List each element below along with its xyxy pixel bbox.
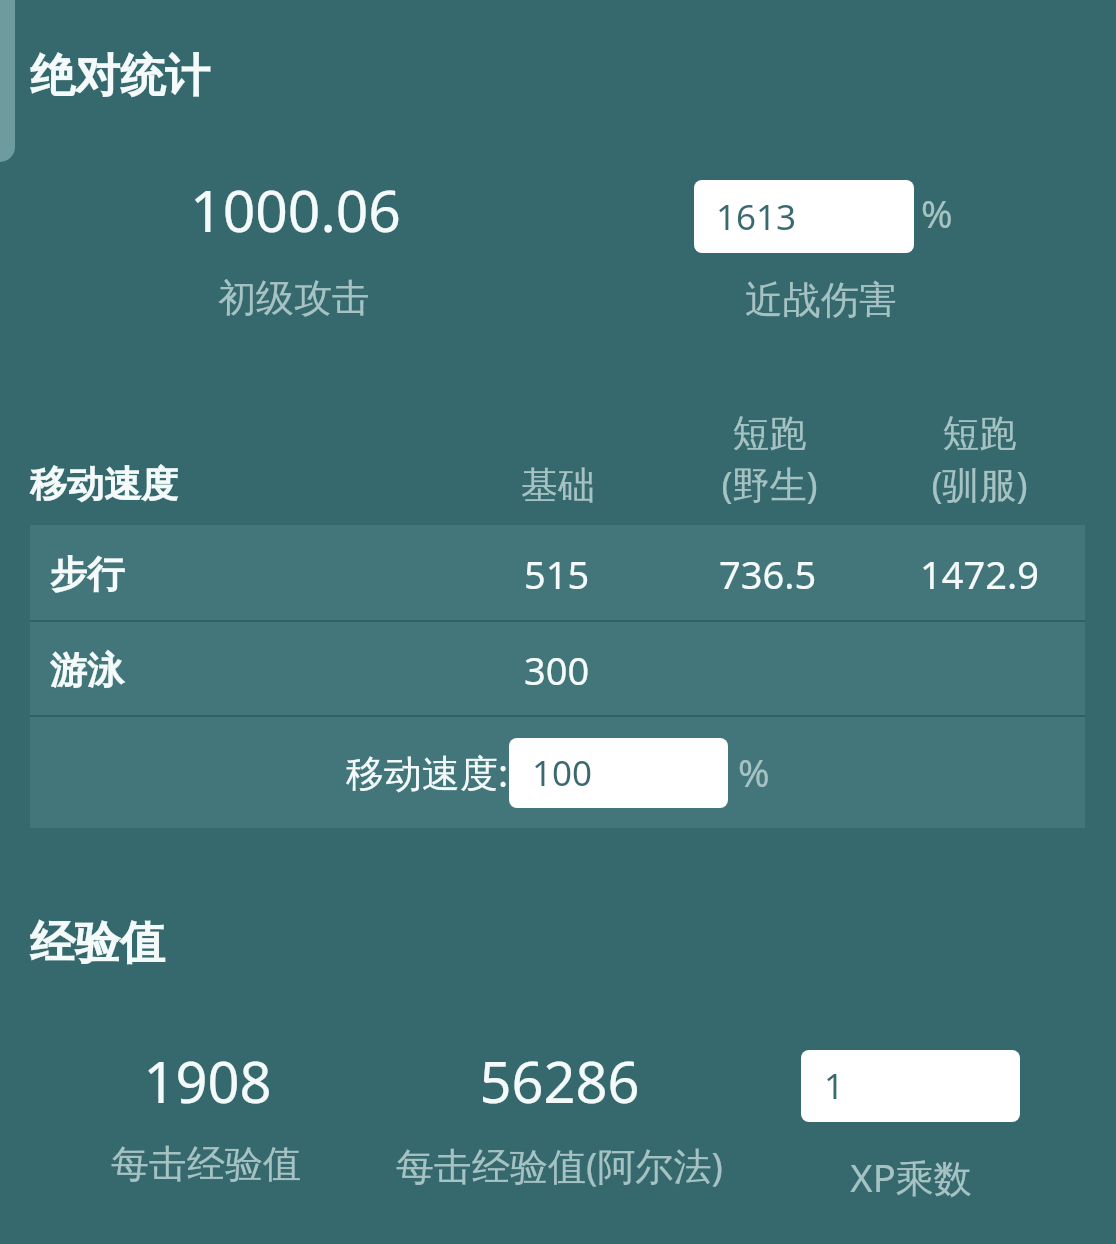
staticText: 1613	[716, 193, 797, 241]
button[interactable]: 游泳	[30, 622, 1085, 715]
staticText: %	[738, 746, 770, 798]
button[interactable]: Navigation drawer handle	[0, 0, 15, 162]
staticText: 近战伤害	[745, 276, 897, 324]
staticText: 300	[524, 644, 590, 696]
staticText: 移动速度	[30, 461, 178, 508]
staticText: 步行	[50, 551, 124, 598]
button[interactable]	[145, 165, 445, 330]
button[interactable]: Melee damage percent input	[694, 180, 914, 253]
button[interactable]: Movement speed percent input	[509, 738, 728, 808]
staticText: 736.5	[719, 548, 817, 600]
staticText: 1472.9	[920, 548, 1039, 600]
button[interactable]: XP multiplier input	[801, 1050, 1020, 1122]
staticText: %	[921, 187, 953, 239]
staticText: 1	[824, 1062, 845, 1110]
staticText: 1000.06	[190, 171, 401, 249]
staticText: 绝对统计	[30, 48, 210, 105]
staticText: 515	[524, 548, 590, 600]
staticText: 每击经验值(阿尔法)	[396, 1139, 723, 1191]
staticText: 经验值	[30, 915, 165, 972]
staticText: 短跑 (驯服)	[931, 410, 1028, 509]
button[interactable]: 步行	[30, 525, 1085, 620]
staticText: 短跑 (野生)	[721, 410, 818, 509]
staticText: 1908	[143, 1043, 272, 1119]
staticText: XP乘数	[850, 1151, 972, 1203]
staticText: 100	[532, 749, 593, 797]
staticText: 移动速度:	[346, 746, 509, 798]
staticText: 初级攻击	[218, 274, 370, 322]
staticText: 56286	[479, 1043, 640, 1119]
staticText: 每击经验值	[111, 1140, 301, 1188]
staticText: 基础	[521, 462, 595, 509]
staticText: 游泳	[50, 647, 124, 694]
